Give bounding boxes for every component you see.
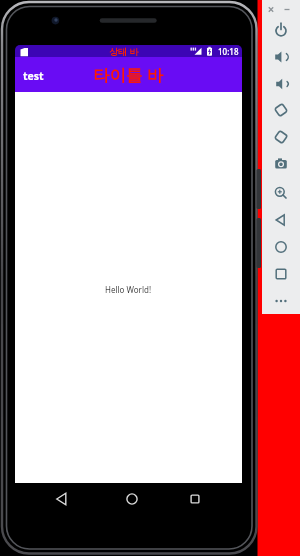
button[interactable] (269, 208, 293, 232)
staticText: test (23, 69, 44, 83)
button[interactable] (187, 491, 203, 507)
button[interactable] (269, 262, 293, 286)
button[interactable] (124, 491, 140, 507)
button[interactable] (269, 18, 293, 42)
button[interactable] (269, 152, 293, 176)
button[interactable] (269, 125, 293, 149)
button[interactable] (269, 98, 293, 122)
button[interactable] (54, 491, 70, 507)
staticText: 타이틀 바 (93, 63, 164, 86)
staticText: 상태 바 (109, 45, 139, 57)
button[interactable] (269, 181, 293, 205)
staticText: 10:18 (218, 46, 239, 57)
button[interactable] (269, 72, 293, 96)
button[interactable] (269, 235, 293, 259)
staticText: Hello World! (105, 284, 152, 295)
button[interactable] (269, 289, 293, 313)
button[interactable] (269, 45, 293, 69)
